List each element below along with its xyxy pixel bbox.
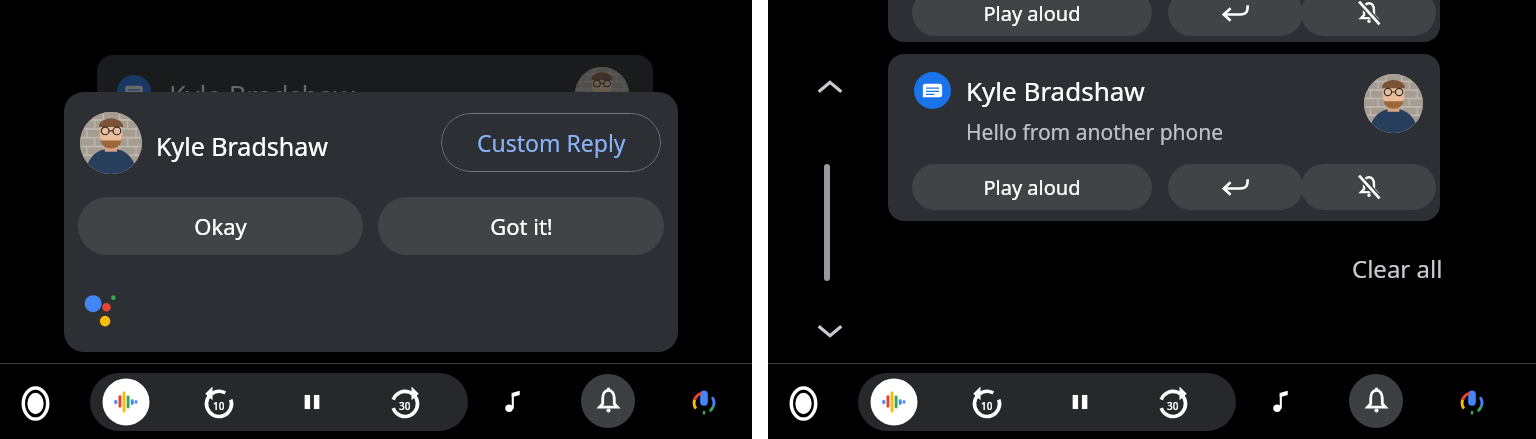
button[interactable]: Voice assistant bbox=[682, 380, 726, 424]
staticText: Kyle Bradshaw bbox=[966, 73, 1145, 108]
button[interactable]: Pause bbox=[290, 380, 334, 424]
staticText: 10 bbox=[213, 399, 225, 413]
button[interactable]: Forward 30 seconds bbox=[1151, 380, 1195, 424]
button[interactable]: Google Podcasts bbox=[869, 377, 919, 427]
button[interactable]: Custom Reply bbox=[441, 113, 661, 172]
button[interactable]: Scroll down bbox=[813, 314, 847, 348]
button[interactable]: Kyle Bradshaw bbox=[888, 54, 1440, 221]
staticText: 30 bbox=[399, 399, 411, 413]
button[interactable]: Mute notifications bbox=[1301, 164, 1436, 210]
button[interactable]: Scroll up bbox=[813, 70, 847, 104]
staticText: Okay bbox=[194, 211, 247, 241]
button[interactable]: Notifications bbox=[1349, 374, 1403, 428]
button[interactable]: Got it! bbox=[378, 197, 664, 255]
staticText: Hello from another phone bbox=[966, 118, 1224, 147]
staticText: Kyle Bradshaw bbox=[169, 77, 355, 114]
staticText: Clear all bbox=[1352, 252, 1443, 285]
button[interactable]: Home bbox=[781, 381, 825, 425]
staticText: Custom Reply bbox=[477, 127, 626, 158]
button[interactable]: Pause bbox=[1058, 380, 1102, 424]
button[interactable]: Voice assistant bbox=[1450, 380, 1494, 424]
button[interactable]: Reply bbox=[1168, 164, 1303, 210]
staticText: 10 bbox=[981, 399, 993, 413]
button[interactable]: Play aloud bbox=[888, 0, 1440, 42]
button[interactable]: Notifications bbox=[581, 374, 635, 428]
button[interactable]: Mute bbox=[1301, 0, 1436, 36]
button[interactable]: Play aloud bbox=[912, 0, 1152, 36]
button[interactable]: Okay bbox=[78, 197, 363, 255]
button[interactable]: Media bbox=[1259, 380, 1303, 424]
button[interactable]: Play aloud bbox=[912, 164, 1152, 210]
staticText: Play aloud bbox=[983, 174, 1081, 201]
button[interactable]: Media bbox=[491, 380, 535, 424]
button[interactable]: Replay 10 seconds bbox=[965, 380, 1009, 424]
staticText: Got it! bbox=[490, 211, 553, 241]
button[interactable]: Replay 10 seconds bbox=[197, 380, 241, 424]
staticText: 30 bbox=[1167, 399, 1179, 413]
button[interactable]: Home bbox=[13, 381, 57, 425]
staticText: Kyle Bradshaw bbox=[156, 129, 328, 163]
button[interactable]: Google Podcasts bbox=[101, 377, 151, 427]
staticText: Play aloud bbox=[983, 0, 1081, 27]
button[interactable]: Clear all bbox=[1346, 246, 1449, 291]
button[interactable]: Reply bbox=[1168, 0, 1303, 36]
button[interactable]: Forward 30 seconds bbox=[383, 380, 427, 424]
